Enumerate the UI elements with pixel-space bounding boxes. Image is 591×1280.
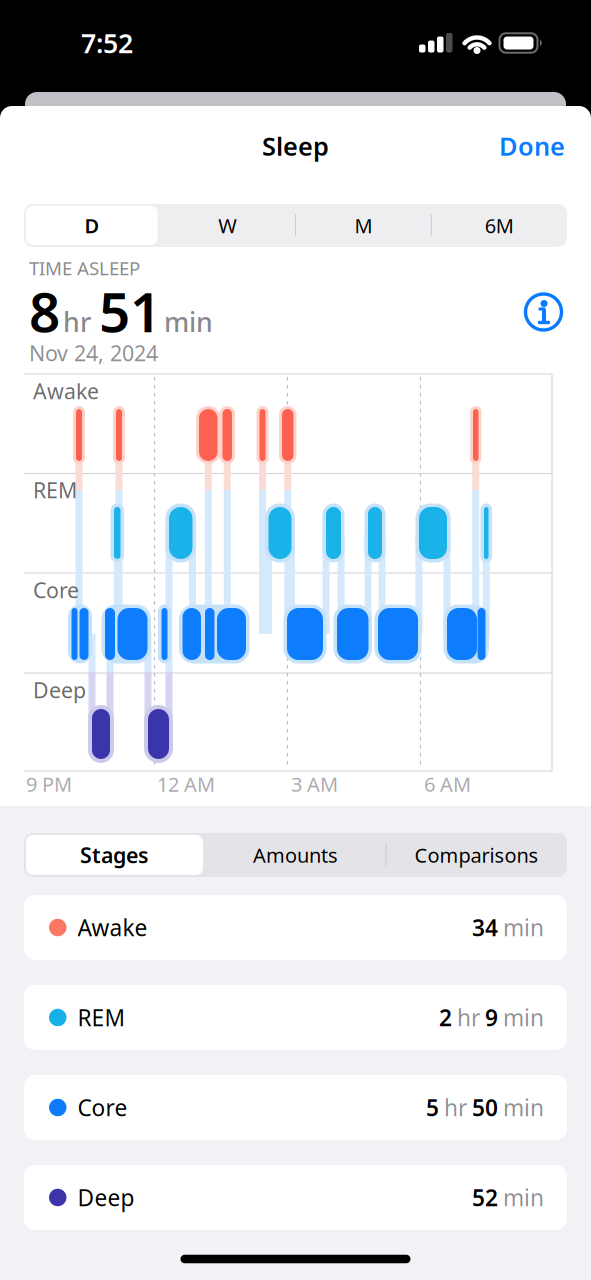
staticText: 6 AM	[424, 771, 471, 797]
staticText: Deep	[33, 676, 86, 704]
staticText: min	[164, 304, 213, 339]
button[interactable]: W	[160, 204, 296, 247]
button[interactable]: Done	[499, 129, 565, 163]
button[interactable]: Info	[521, 290, 565, 334]
staticText: hr	[457, 1002, 480, 1032]
staticText: 2	[439, 1002, 452, 1032]
button[interactable]: Comparisons	[386, 833, 567, 877]
staticText: 9	[485, 1002, 498, 1032]
staticText: W	[218, 212, 237, 239]
button[interactable]: 6M	[431, 204, 567, 247]
staticText: Done	[499, 129, 565, 163]
staticText: Deep	[77, 1182, 134, 1212]
staticText: Stages	[80, 841, 149, 869]
staticText: 12 AM	[157, 771, 215, 797]
button[interactable]: D	[24, 204, 160, 247]
staticText: 52	[472, 1182, 498, 1212]
staticText: Awake	[77, 912, 147, 942]
staticText: M	[354, 212, 372, 239]
staticText: min	[503, 1092, 544, 1122]
staticText: REM	[77, 1002, 125, 1032]
staticText: 8	[29, 275, 60, 347]
staticText: 5	[426, 1092, 439, 1122]
staticText: min	[503, 1002, 544, 1032]
staticText: min	[503, 1182, 544, 1212]
staticText: D	[84, 212, 99, 239]
staticText: hr	[444, 1092, 467, 1122]
button[interactable]: Core	[24, 1075, 567, 1140]
staticText: Comparisons	[414, 842, 538, 868]
staticText: min	[503, 912, 544, 942]
staticText: Core	[33, 576, 79, 604]
button[interactable]: M	[295, 204, 431, 247]
staticText: TIME ASLEEP	[29, 256, 140, 280]
staticText: Core	[77, 1092, 127, 1122]
staticText: REM	[33, 476, 77, 504]
staticText: 3 AM	[291, 771, 338, 797]
staticText: 50	[472, 1092, 498, 1122]
staticText: Amounts	[253, 842, 338, 868]
staticText: 51	[99, 275, 161, 347]
button[interactable]: Awake	[24, 895, 567, 960]
button[interactable]: Stages	[24, 833, 205, 877]
button[interactable]: Amounts	[205, 833, 386, 877]
staticText: hr	[63, 304, 91, 339]
staticText: 9 PM	[26, 771, 72, 797]
button[interactable]: Deep	[24, 1165, 567, 1230]
staticText: Awake	[33, 377, 99, 405]
staticText: Sleep	[262, 129, 329, 163]
button[interactable]: REM	[24, 985, 567, 1050]
staticText: Nov 24, 2024	[29, 339, 158, 367]
staticText: 6M	[485, 212, 514, 239]
staticText: 34	[472, 912, 498, 942]
staticText: 7:52	[81, 25, 133, 61]
